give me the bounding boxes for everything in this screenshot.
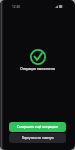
button[interactable]: Совершить ещё операцию <box>9 122 66 132</box>
other: Success <box>30 49 46 65</box>
button[interactable]: Вернуться на главную <box>9 133 66 143</box>
staticText: 12:30 <box>12 5 21 9</box>
other: Battery <box>59 5 63 8</box>
staticText: Операция выполнена <box>0 67 75 71</box>
staticText: Совершить ещё операцию <box>17 125 58 129</box>
other: Signal <box>55 5 58 8</box>
staticText: Вернуться на главную <box>22 136 54 140</box>
